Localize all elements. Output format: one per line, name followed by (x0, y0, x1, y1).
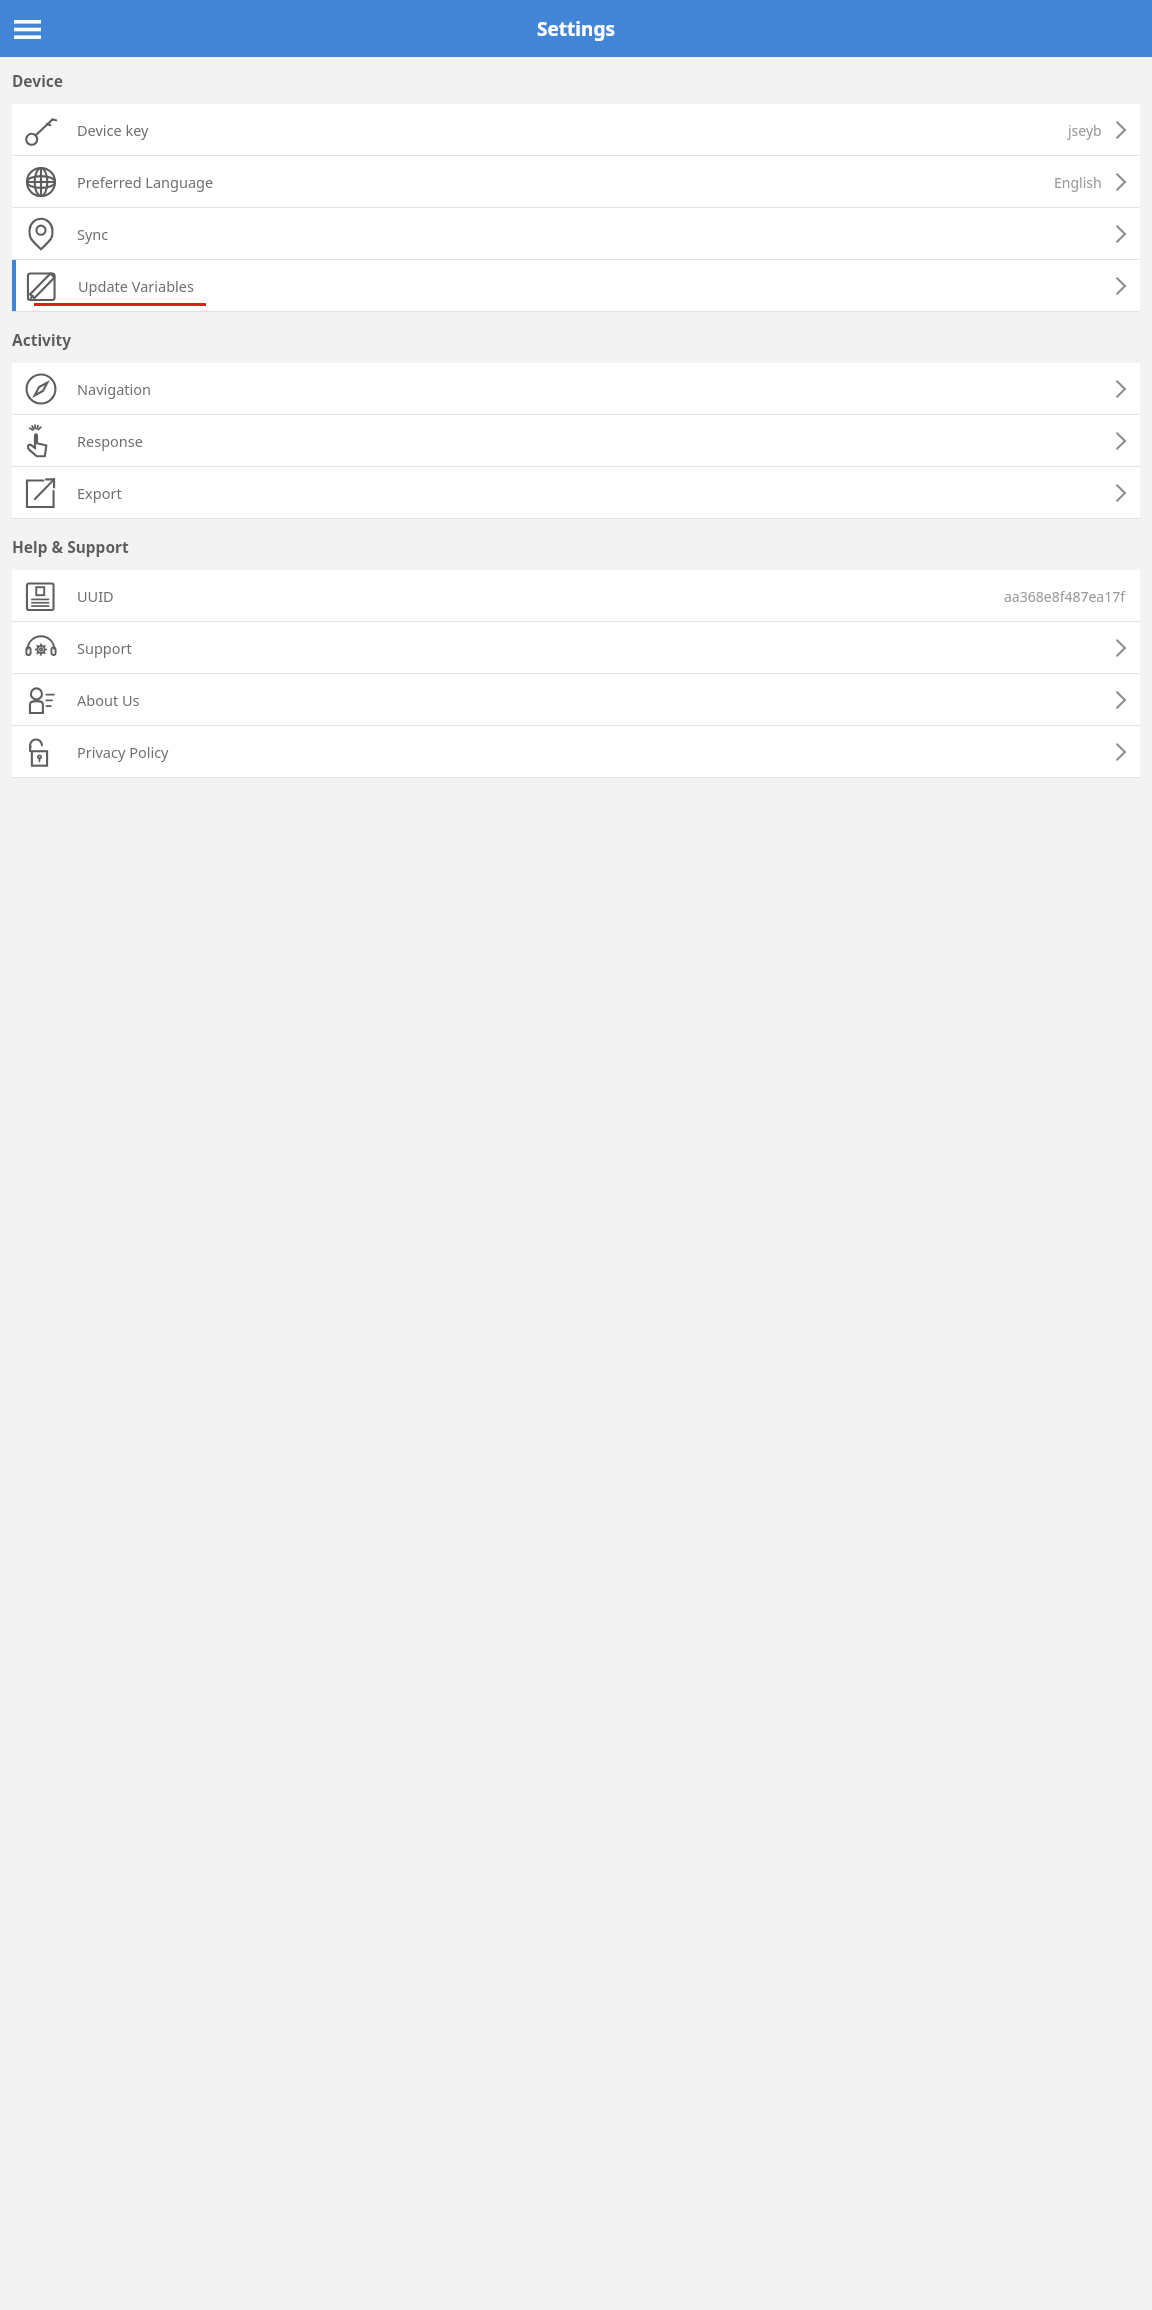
button[interactable]: Open navigation menu (4, 6, 50, 52)
button[interactable]: Device key (12, 104, 1140, 156)
staticText: Activity (12, 329, 72, 350)
staticText: UUID (77, 586, 114, 606)
button[interactable]: About Us (12, 674, 1140, 726)
staticText: Device (12, 70, 64, 91)
staticText: Settings (537, 16, 615, 42)
staticText: Privacy Policy (77, 742, 169, 762)
staticText: Support (77, 638, 132, 658)
button[interactable]: Update Variables (12, 260, 1140, 312)
staticText: Device key (77, 120, 149, 140)
staticText: Response (77, 431, 143, 451)
staticText: Sync (77, 224, 109, 244)
staticText: Navigation (77, 379, 152, 399)
button[interactable]: Preferred Language (12, 156, 1140, 208)
button[interactable]: Support (12, 622, 1140, 674)
staticText: Preferred Language (77, 172, 214, 192)
button[interactable]: Navigation (12, 363, 1140, 415)
button[interactable]: Response (12, 415, 1140, 467)
button[interactable]: Privacy Policy (12, 726, 1140, 778)
staticText: Help & Support (12, 536, 129, 557)
button[interactable]: UUID (12, 570, 1140, 622)
staticText: Update Variables (78, 276, 194, 296)
staticText: Export (77, 483, 122, 503)
button[interactable]: Export (12, 467, 1140, 519)
staticText: English (1054, 173, 1102, 192)
staticText: aa368e8f487ea17f (1004, 587, 1126, 606)
staticText: About Us (77, 690, 140, 710)
staticText: jseyb (1068, 121, 1102, 140)
button[interactable]: Sync (12, 208, 1140, 260)
